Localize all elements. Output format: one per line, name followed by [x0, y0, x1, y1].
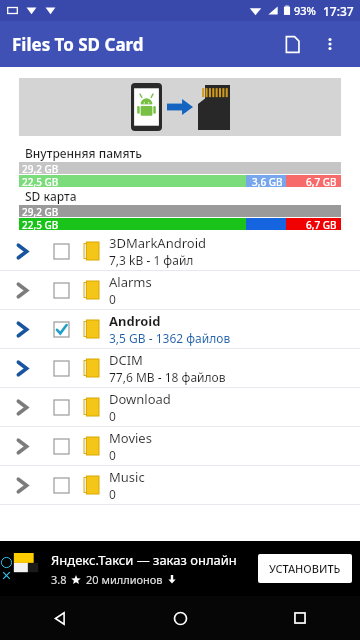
staticText: Android — [109, 312, 161, 330]
staticText: Download — [109, 390, 171, 408]
button[interactable]: Expand 3DMarkAndroid — [0, 232, 44, 270]
staticText: Яндекс.Такси — заказ онлайн — [51, 551, 237, 569]
staticText: 6,7 GB — [306, 218, 337, 230]
staticText: 0 — [109, 408, 116, 424]
staticText: 3,6 GB — [252, 175, 283, 187]
staticText: 22,5 GB — [22, 175, 59, 187]
staticText: 3.8 — [51, 572, 67, 587]
button[interactable]: Expand Android — [0, 310, 44, 348]
button[interactable]: Expand Download — [0, 388, 44, 426]
staticText: УСТАНОВИТЬ — [269, 561, 341, 576]
button[interactable]: More options — [312, 26, 348, 62]
button[interactable]: Expand Music — [0, 466, 44, 504]
button[interactable]: Select Movies — [44, 427, 78, 465]
button[interactable]: Expand DCIM — [0, 349, 44, 387]
button[interactable]: Expand DCIM — [0, 349, 360, 387]
button[interactable]: Expand Movies — [0, 427, 44, 465]
staticText: Music — [109, 468, 145, 486]
staticText: Files To SD Card — [12, 33, 144, 56]
staticText: 3,5 GB - 1362 файлов — [109, 330, 231, 346]
staticText: 3DMarkAndroid — [109, 234, 206, 252]
button[interactable]: Select Download — [44, 388, 78, 426]
button[interactable]: Select DCIM — [44, 349, 78, 387]
button[interactable]: Back — [0, 596, 120, 640]
button[interactable]: Expand Alarms — [0, 271, 360, 309]
staticText: 29,2 GB — [22, 162, 59, 174]
button[interactable]: Expand Android — [0, 310, 360, 348]
button[interactable]: Expand Music — [0, 466, 360, 504]
staticText: Movies — [109, 429, 152, 447]
button[interactable]: Select Alarms — [44, 271, 78, 309]
button[interactable]: Select 3DMarkAndroid — [44, 232, 78, 270]
button[interactable]: Expand Alarms — [0, 271, 44, 309]
button[interactable]: Expand Movies — [0, 427, 360, 465]
staticText: Alarms — [109, 273, 152, 291]
staticText: 20 миллионов — [86, 572, 163, 587]
staticText: 0 — [109, 291, 116, 307]
staticText: 6,7 GB — [306, 175, 337, 187]
staticText: DCIM — [109, 351, 143, 369]
staticText: 0 — [109, 486, 116, 502]
staticText: Внутренняя память — [25, 145, 142, 161]
staticText: 93% — [294, 3, 316, 18]
staticText: 7,3 kB - 1 файл — [109, 252, 194, 268]
button[interactable]: Expand Download — [0, 388, 360, 426]
button[interactable]: Recents — [240, 596, 360, 640]
staticText: 0 — [109, 447, 116, 463]
staticText: 17:37 — [323, 3, 354, 19]
staticText: 77,6 MB - 18 файлов — [109, 369, 226, 385]
button[interactable]: Select Music — [44, 466, 78, 504]
button[interactable]: New file — [272, 24, 312, 64]
staticText: 29,2 GB — [22, 205, 59, 217]
button[interactable]: Home — [120, 596, 240, 640]
staticText: SD карта — [25, 188, 77, 204]
button[interactable]: Select Android — [44, 310, 78, 348]
button[interactable]: Expand 3DMarkAndroid — [0, 232, 360, 270]
staticText: 22,5 GB — [22, 218, 59, 230]
button[interactable]: УСТАНОВИТЬ — [258, 554, 352, 583]
